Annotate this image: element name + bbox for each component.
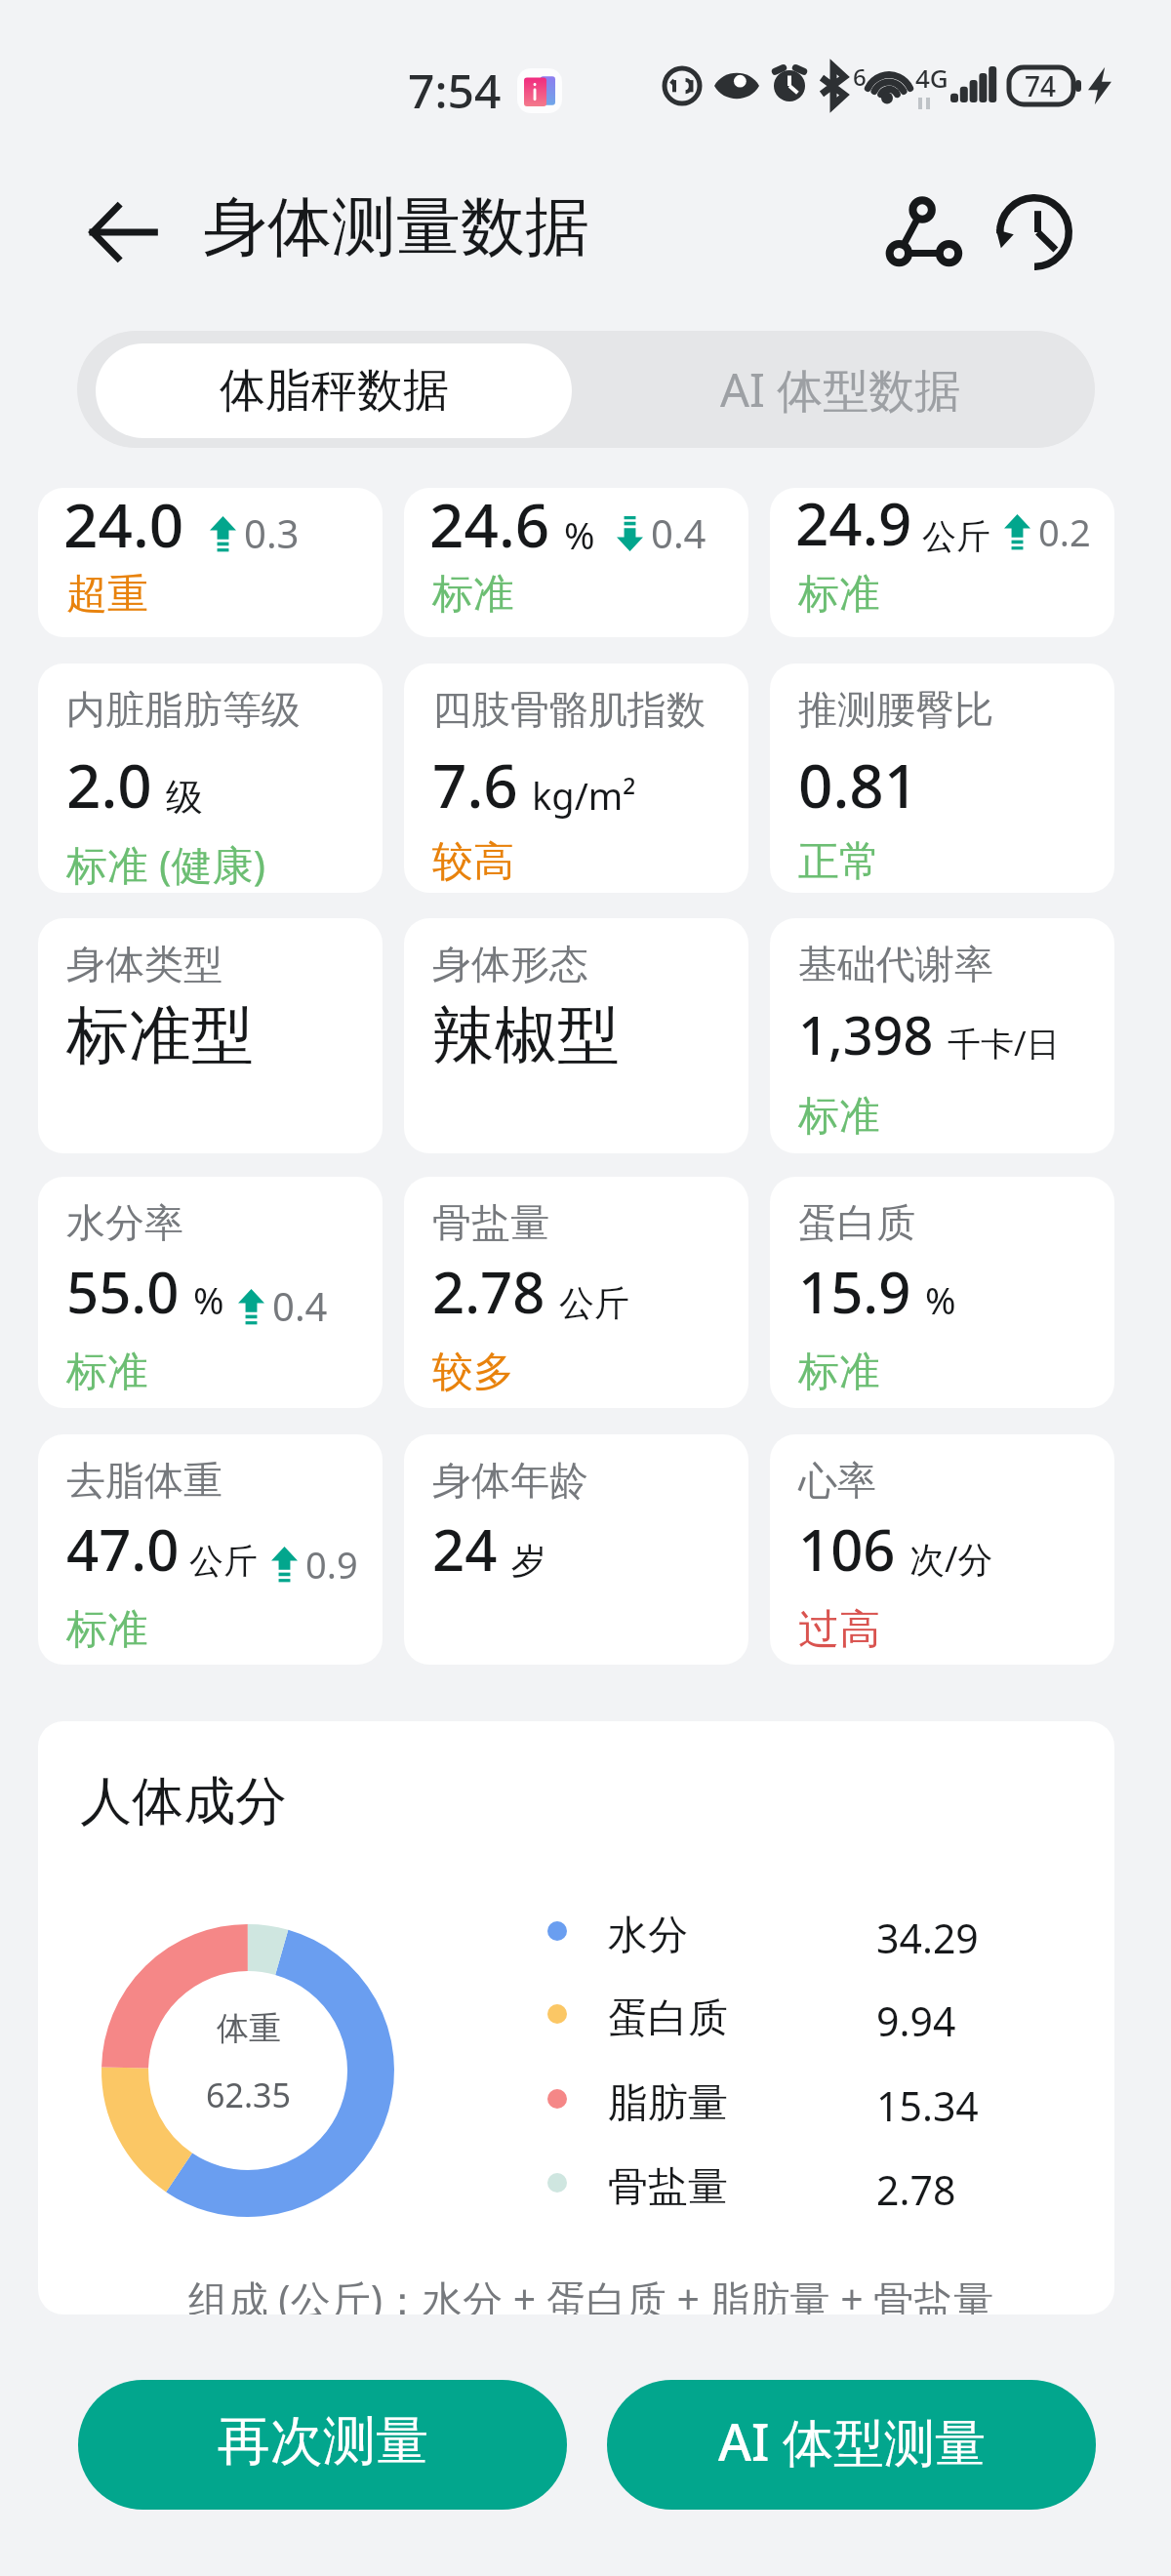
staticText: 基础代谢率 xyxy=(798,940,993,988)
staticText: 身体测量数据 xyxy=(203,186,589,267)
staticText: 推测腰臀比 xyxy=(798,685,993,734)
staticText: 公斤 xyxy=(559,1281,629,1325)
staticText: 千卡/日 xyxy=(948,1021,1060,1066)
staticText: 岁 xyxy=(511,1539,546,1583)
staticText: 骨盐量 xyxy=(608,2162,728,2213)
button[interactable]: 心率 xyxy=(770,1434,1114,1665)
staticText: 标准 xyxy=(798,569,880,621)
button[interactable]: 蛋白质 xyxy=(770,1177,1114,1408)
staticText: 蛋白质 xyxy=(798,1198,915,1247)
staticText: 标准 xyxy=(432,569,514,621)
staticText: 过高 xyxy=(798,1604,880,1656)
staticText: 蛋白质 xyxy=(608,1993,728,2044)
button[interactable]: 身体类型 xyxy=(38,918,383,1153)
button[interactable]: AI 体型测量 xyxy=(607,2380,1096,2510)
button[interactable]: 推测腰臀比 xyxy=(770,664,1114,893)
staticText: 超重 xyxy=(66,569,148,621)
button[interactable]: Back xyxy=(71,181,175,284)
staticText: 身体类型 xyxy=(66,940,222,988)
staticText: 标准 xyxy=(66,1347,148,1398)
button[interactable]: History xyxy=(988,185,1081,279)
staticText: 55.0 xyxy=(66,1253,180,1330)
staticText: 2.78 xyxy=(876,2162,956,2217)
staticText: 公斤 xyxy=(189,1540,258,1583)
staticText: 脂肪量 xyxy=(608,2078,728,2129)
staticText: 较高 xyxy=(432,836,514,888)
button[interactable]: 24.6 xyxy=(404,488,748,637)
staticText: 标准 xyxy=(798,1347,880,1398)
staticText: 身体形态 xyxy=(432,940,588,988)
staticText: 0.81 xyxy=(798,744,919,825)
staticText: 62.35 xyxy=(206,2073,291,2117)
staticText: 标准 (健康) xyxy=(66,836,266,892)
staticText: 0.4 xyxy=(651,506,707,559)
staticText: 9.94 xyxy=(876,1993,956,2048)
button[interactable]: AI 体型数据 xyxy=(585,331,1095,448)
staticText: 24.0 xyxy=(63,488,184,565)
button[interactable]: 四肢骨骼肌指数 xyxy=(404,664,748,893)
staticText: 次/分 xyxy=(909,1535,993,1583)
staticText: AI 体型数据 xyxy=(720,358,961,421)
staticText: 0.3 xyxy=(244,506,300,559)
staticText: AI 体型测量 xyxy=(718,2406,986,2475)
staticText: 24.6 xyxy=(429,488,550,565)
staticText: 0.9 xyxy=(305,1539,358,1590)
staticText: 骨盐量 xyxy=(432,1198,549,1247)
button[interactable]: 身体年龄 xyxy=(404,1434,748,1665)
staticText: 6 xyxy=(853,60,867,93)
button[interactable]: 去脂体重 xyxy=(38,1434,383,1665)
staticText: 标准 xyxy=(798,1091,880,1143)
staticText: 心率 xyxy=(798,1456,876,1505)
staticText: 24 xyxy=(432,1510,498,1588)
staticText: 74 xyxy=(1025,67,1057,104)
staticText: 24.9 xyxy=(795,488,912,563)
button[interactable]: 24.0 xyxy=(38,488,383,637)
staticText: 7.6 xyxy=(432,744,518,825)
staticText: 公斤 xyxy=(922,515,990,558)
staticText: 级 xyxy=(166,774,203,821)
staticText: 2.0 xyxy=(66,744,152,825)
staticText: 标准型 xyxy=(66,996,254,1075)
staticText: 人体成分 xyxy=(80,1769,287,1834)
staticText: 7:54 xyxy=(408,59,502,122)
staticText: 组成 (公斤)：水分 + 蛋白质 + 脂肪量 + 骨盐量 xyxy=(53,2272,1114,2314)
staticText: 106 xyxy=(798,1510,896,1588)
button[interactable]: 再次测量 xyxy=(78,2380,567,2510)
staticText: 34.29 xyxy=(876,1911,979,1965)
staticText: 身体年龄 xyxy=(432,1456,588,1505)
button[interactable]: Share xyxy=(878,185,972,279)
staticText: 四肢骨骼肌指数 xyxy=(432,685,706,734)
staticText: 体重 xyxy=(217,2008,281,2049)
staticText: 2.78 xyxy=(432,1253,545,1330)
button[interactable]: 水分率 xyxy=(38,1177,383,1408)
staticText: % xyxy=(193,1274,224,1325)
staticText: 标准 xyxy=(66,1604,148,1656)
staticText: 去脂体重 xyxy=(66,1456,222,1505)
staticText: 体脂秤数据 xyxy=(220,362,449,420)
staticText: 内脏脂肪等级 xyxy=(66,685,301,734)
button[interactable]: 骨盐量 xyxy=(404,1177,748,1408)
button[interactable]: 内脏脂肪等级 xyxy=(38,664,383,893)
staticText: kg/m² xyxy=(532,770,636,821)
staticText: % xyxy=(925,1274,956,1325)
staticText: 再次测量 xyxy=(218,2408,428,2475)
button[interactable]: 24.9 xyxy=(770,488,1114,637)
staticText: 47.0 xyxy=(66,1510,180,1588)
staticText: 15.34 xyxy=(876,2078,979,2133)
staticText: 0.4 xyxy=(272,1279,328,1332)
staticText: 水分率 xyxy=(66,1198,183,1247)
staticText: 正常 xyxy=(798,836,880,888)
button[interactable]: 体脂秤数据 xyxy=(96,343,572,438)
staticText: 较多 xyxy=(432,1347,514,1398)
staticText: 4G xyxy=(915,60,949,95)
staticText: 15.9 xyxy=(798,1253,911,1330)
staticText: 1,398 xyxy=(798,998,934,1070)
button[interactable]: 身体形态 xyxy=(404,918,748,1153)
staticText: % xyxy=(564,509,595,560)
staticText: 水分 xyxy=(608,1911,688,1961)
button[interactable]: 基础代谢率 xyxy=(770,918,1114,1153)
staticText: 辣椒型 xyxy=(432,996,620,1075)
staticText: 0.2 xyxy=(1038,506,1091,557)
